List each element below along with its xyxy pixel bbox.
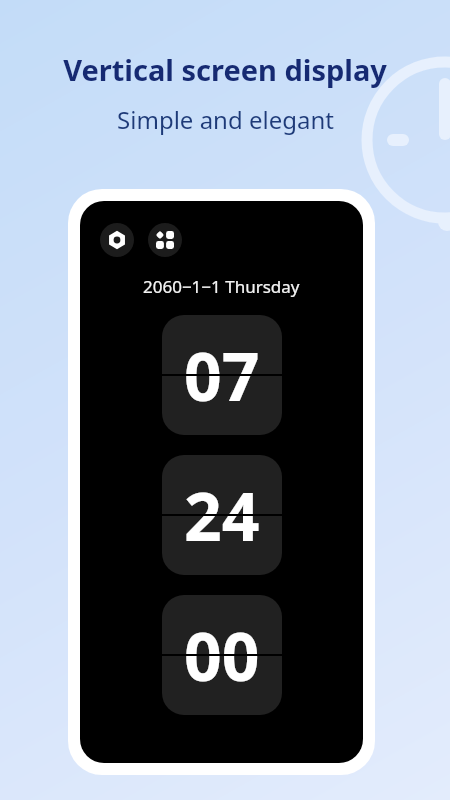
button[interactable]: 24 <box>162 455 282 575</box>
staticText: 07 <box>184 330 260 420</box>
button[interactable]: Settings <box>100 223 134 257</box>
staticText: 2060−1−1 Thursday <box>143 275 300 298</box>
staticText: 24 <box>184 470 260 560</box>
button[interactable]: 00 <box>162 595 282 715</box>
staticText: 00 <box>184 610 260 700</box>
button[interactable]: Apps <box>148 223 182 257</box>
button[interactable]: 07 <box>162 315 282 435</box>
staticText: Simple and elegant <box>117 103 334 136</box>
staticText: Vertical screen display <box>63 50 387 89</box>
